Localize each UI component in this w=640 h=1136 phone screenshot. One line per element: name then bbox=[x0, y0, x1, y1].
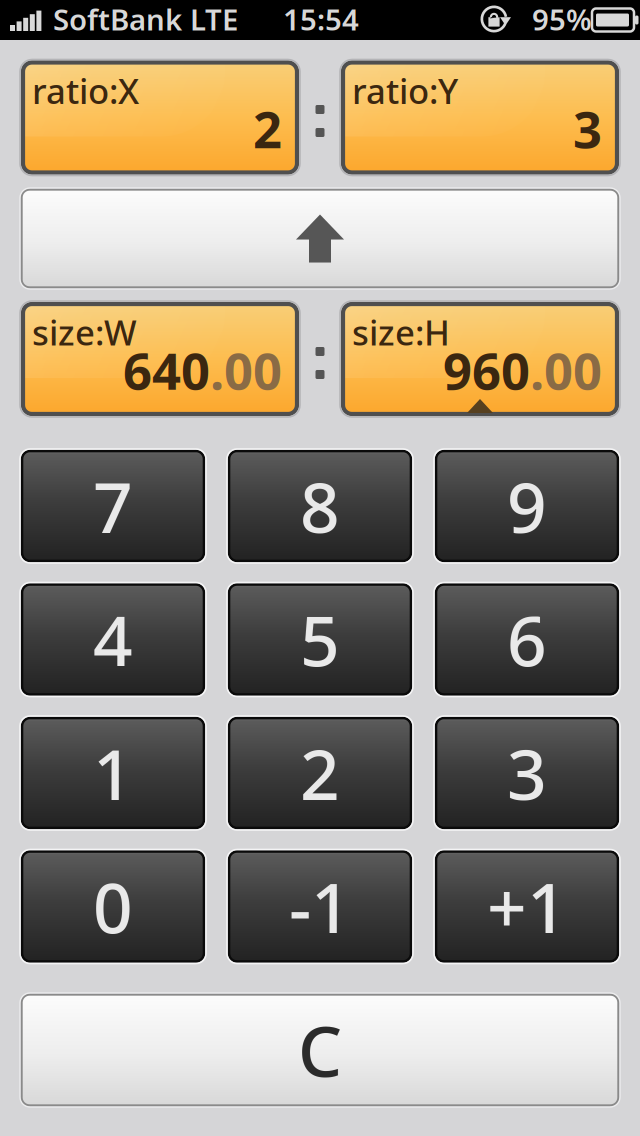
staticText: 0 bbox=[93, 860, 133, 953]
button[interactable]: 1 bbox=[20, 716, 206, 830]
staticText: SoftBank bbox=[53, 0, 182, 38]
button[interactable]: +1 bbox=[434, 849, 620, 963]
button[interactable]: 5 bbox=[227, 582, 413, 696]
button[interactable]: 2 bbox=[227, 716, 413, 830]
staticText: LTE bbox=[190, 0, 238, 38]
staticText: 15:54 bbox=[283, 0, 359, 38]
staticText: 4 bbox=[93, 593, 133, 686]
button[interactable]: 7 bbox=[20, 449, 206, 563]
staticText: 960 bbox=[443, 336, 530, 404]
staticText: size:H bbox=[352, 309, 450, 355]
staticText: .00 bbox=[530, 336, 602, 404]
staticText: -1 bbox=[289, 860, 351, 953]
staticText: 7 bbox=[93, 460, 133, 552]
staticText: 6 bbox=[507, 593, 547, 686]
button[interactable]: ratio:X bbox=[20, 59, 300, 175]
staticText: 2 bbox=[300, 727, 340, 819]
staticText: .00 bbox=[210, 336, 282, 404]
staticText: size:W bbox=[32, 309, 137, 355]
staticText: C bbox=[298, 1004, 342, 1096]
staticText: 2 bbox=[253, 95, 282, 162]
staticText: ratio:X bbox=[32, 67, 139, 113]
staticText: 9 bbox=[507, 460, 547, 552]
staticText: 3 bbox=[573, 95, 602, 162]
staticText: 95% bbox=[532, 0, 592, 38]
button[interactable]: 8 bbox=[227, 449, 413, 563]
button[interactable]: size:H bbox=[340, 301, 620, 417]
staticText: ratio:Y bbox=[352, 67, 458, 113]
staticText: 3 bbox=[507, 727, 547, 819]
button[interactable]: 4 bbox=[20, 582, 206, 696]
button[interactable]: ratio:Y bbox=[340, 59, 620, 175]
button[interactable]: 0 bbox=[20, 849, 206, 963]
staticText: 8 bbox=[300, 460, 340, 552]
staticText: 1 bbox=[93, 727, 133, 819]
button[interactable]: 6 bbox=[434, 582, 620, 696]
staticText: 5 bbox=[300, 593, 340, 686]
button[interactable]: size:W bbox=[20, 301, 300, 417]
button[interactable]: -1 bbox=[227, 849, 413, 963]
button[interactable]: Clear bbox=[20, 993, 620, 1107]
button[interactable]: 9 bbox=[434, 449, 620, 563]
staticText: 640 bbox=[123, 336, 210, 404]
staticText: +1 bbox=[487, 860, 567, 953]
button[interactable]: Apply bbox=[20, 188, 620, 289]
button[interactable]: 3 bbox=[434, 716, 620, 830]
